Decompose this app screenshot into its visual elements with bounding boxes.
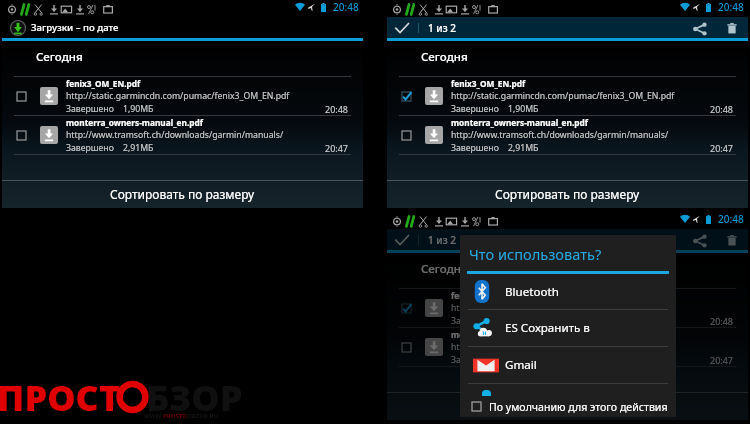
staticText: Сегодня (421, 261, 468, 277)
staticText: Завершено (451, 142, 499, 154)
button[interactable]: fenix3_OM_EN.pdf (2, 77, 363, 115)
staticText: Загрузки – по дате (31, 21, 119, 34)
staticText: Сортировать по размеру (495, 186, 640, 202)
button[interactable]: Done (395, 21, 409, 35)
staticText: 1,90МБ (508, 315, 539, 327)
staticText: 20:47 (710, 354, 734, 366)
staticText: 20:48 (710, 315, 734, 327)
staticText: http://static.garmincdn.com/pumac/fenix3… (451, 302, 675, 314)
staticText: fenix3_OM_EN.pdf (66, 78, 141, 89)
staticText: 20:48 (718, 0, 744, 14)
staticText: http://www.tramsoft.ch/downloads/garmin/… (451, 341, 669, 353)
staticText: Bluetooth (505, 284, 559, 300)
staticText: ES Сохранить в (505, 320, 590, 336)
staticText: 20:48 (325, 103, 349, 115)
staticText: 20:48 (718, 212, 744, 226)
staticText: fenix3_OM_EN.pdf (451, 290, 526, 301)
staticText: Завершено (451, 103, 499, 115)
staticText: 1,90МБ (123, 103, 154, 115)
staticText: 20:47 (325, 142, 349, 154)
staticText: Gmail (505, 357, 537, 373)
staticText: Сортировать по размеру (495, 398, 640, 414)
staticText: 1 из 2 (428, 233, 456, 247)
staticText: 1 из 2 (428, 21, 456, 35)
button[interactable]: monterra_owners-manual_en.pdf (387, 328, 748, 366)
button[interactable]: Сортировать по размеру (387, 392, 748, 420)
staticText: http://www.tramsoft.ch/downloads/garmin/… (451, 129, 669, 141)
staticText: 20:48 (333, 0, 359, 14)
staticText: OBZOR.RU (187, 412, 218, 420)
button[interactable]: Загрузки – по дате (10, 17, 119, 38)
staticText: monterra_owners-manual_en.pdf (451, 329, 588, 340)
staticText: http://static.garmincdn.com/pumac/fenix3… (451, 90, 675, 102)
button[interactable]: monterra_owners-manual_en.pdf (2, 116, 363, 154)
staticText: 2,91МБ (123, 142, 154, 154)
staticText: БЗОР (146, 373, 243, 422)
staticText: По умолчанию для этого действия (489, 400, 668, 414)
button[interactable]: monterra_owners-manual_en.pdf (387, 116, 748, 154)
staticText: 20:48 (710, 103, 734, 115)
button[interactable]: Сортировать по размеру (2, 180, 363, 208)
staticText: monterra_owners-manual_en.pdf (66, 117, 203, 128)
button[interactable]: Bluetooth (473, 274, 676, 309)
button[interactable]: Delete (725, 21, 739, 35)
staticText: Сегодня (421, 49, 468, 65)
staticText: 2,91МБ (508, 354, 539, 366)
button[interactable]: Done (395, 233, 409, 247)
button[interactable]: fenix3_OM_EN.pdf (387, 289, 748, 327)
staticText: ПРОСТ (0, 373, 121, 422)
staticText: Завершено (451, 354, 499, 366)
staticText: Завершено (66, 103, 114, 115)
staticText: http://static.garmincdn.com/pumac/fenix3… (66, 90, 290, 102)
staticText: Что использовать? (469, 244, 602, 264)
button[interactable]: Delete (725, 233, 739, 247)
staticText: fenix3_OM_EN.pdf (451, 78, 526, 89)
staticText: Завершено (66, 142, 114, 154)
staticText: http://www.tramsoft.ch/downloads/garmin/… (66, 129, 284, 141)
button[interactable]: ES Сохранить в (473, 310, 676, 346)
staticText: 20:47 (710, 142, 734, 154)
button[interactable]: Share (689, 231, 707, 249)
staticText: Сегодня (36, 49, 83, 65)
button[interactable]: fenix3_OM_EN.pdf (387, 77, 748, 115)
staticText: 1,90МБ (508, 103, 539, 115)
staticText: WWW. (144, 412, 163, 420)
staticText: Завершено (451, 315, 499, 327)
staticText: PROSTO (163, 412, 187, 420)
staticText: Сортировать по размеру (110, 186, 255, 202)
button[interactable]: Share (689, 19, 707, 37)
button[interactable]: Сортировать по размеру (387, 180, 748, 208)
staticText: monterra_owners-manual_en.pdf (451, 117, 588, 128)
button[interactable]: Gmail (473, 347, 676, 383)
staticText: 2,91МБ (508, 142, 539, 154)
button[interactable]: По умолчанию для этого действия (472, 396, 676, 417)
